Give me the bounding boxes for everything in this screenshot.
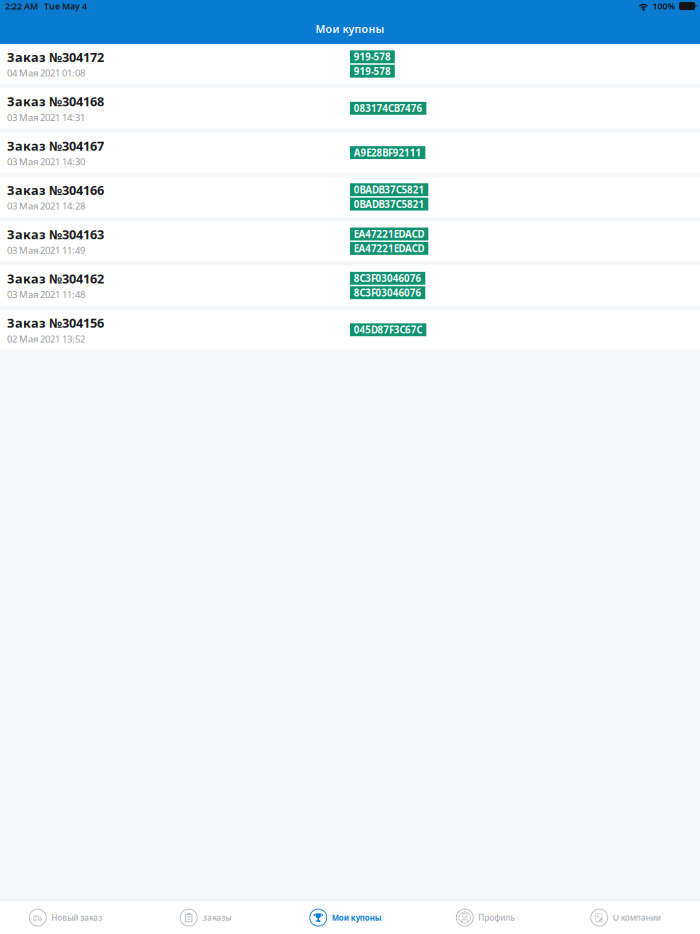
staticText: 03 Мая 2021 14:31 (7, 111, 85, 124)
staticText: Профиль (478, 912, 515, 923)
staticText: 100% (652, 0, 675, 12)
button[interactable]: Заказы (140, 901, 280, 934)
button[interactable]: Мои купоны (280, 901, 420, 934)
staticText: Заказ №304167 (7, 137, 104, 154)
staticText: 0BADB37C5821 (354, 183, 424, 196)
staticText: Мои купоны (315, 21, 384, 36)
button[interactable]: Заказ №304162 (0, 265, 700, 305)
staticText: 2:22 AM (5, 0, 38, 12)
staticText: EA47221EDACD (354, 242, 424, 255)
staticText: 919-578 (354, 65, 391, 78)
staticText: Заказ №304162 (7, 270, 104, 287)
staticText: Заказы (202, 912, 231, 923)
staticText: Новый заказ (51, 912, 102, 923)
staticText: 0BADB37C5821 (354, 197, 424, 211)
staticText: Заказ №304172 (7, 48, 104, 66)
staticText: 083174CB7476 (354, 102, 422, 115)
staticText: 03 Мая 2021 11:49 (7, 244, 85, 257)
button[interactable]: Новый заказ (0, 901, 140, 934)
staticText: Заказ №304168 (7, 93, 104, 110)
button[interactable]: Заказ №304163 (0, 221, 700, 261)
staticText: О компании (613, 912, 661, 923)
staticText: 02 Мая 2021 13:52 (7, 332, 85, 345)
staticText: Заказ №304156 (7, 314, 104, 332)
button[interactable]: Заказ №304172 (0, 44, 700, 84)
staticText: 03 Мая 2021 11:48 (7, 288, 85, 301)
button[interactable]: О компании (560, 901, 700, 934)
button[interactable]: Заказ №304167 (0, 133, 700, 173)
staticText: 8C3F03046076 (354, 286, 421, 299)
button[interactable]: Заказ №304166 (0, 177, 700, 217)
staticText: Заказ №304166 (7, 181, 104, 199)
staticText: A9E28BF92111 (354, 146, 421, 159)
staticText: 919-578 (354, 50, 391, 63)
staticText: Заказ №304163 (7, 226, 104, 243)
staticText: Tue May 4 (44, 0, 87, 12)
staticText: 03 Мая 2021 14:30 (7, 155, 85, 168)
button[interactable]: Заказ №304156 (0, 310, 700, 350)
staticText: 04 Мая 2021 01:08 (7, 66, 85, 79)
button[interactable]: Заказ №304168 (0, 88, 700, 128)
staticText: 03 Мая 2021 14:28 (7, 199, 85, 212)
staticText: 045D87F3C67C (354, 323, 422, 336)
staticText: 8C3F03046076 (354, 272, 421, 285)
staticText: Мои купоны (332, 912, 382, 923)
staticText: EA47221EDACD (354, 227, 424, 241)
button[interactable]: Профиль (420, 901, 560, 934)
